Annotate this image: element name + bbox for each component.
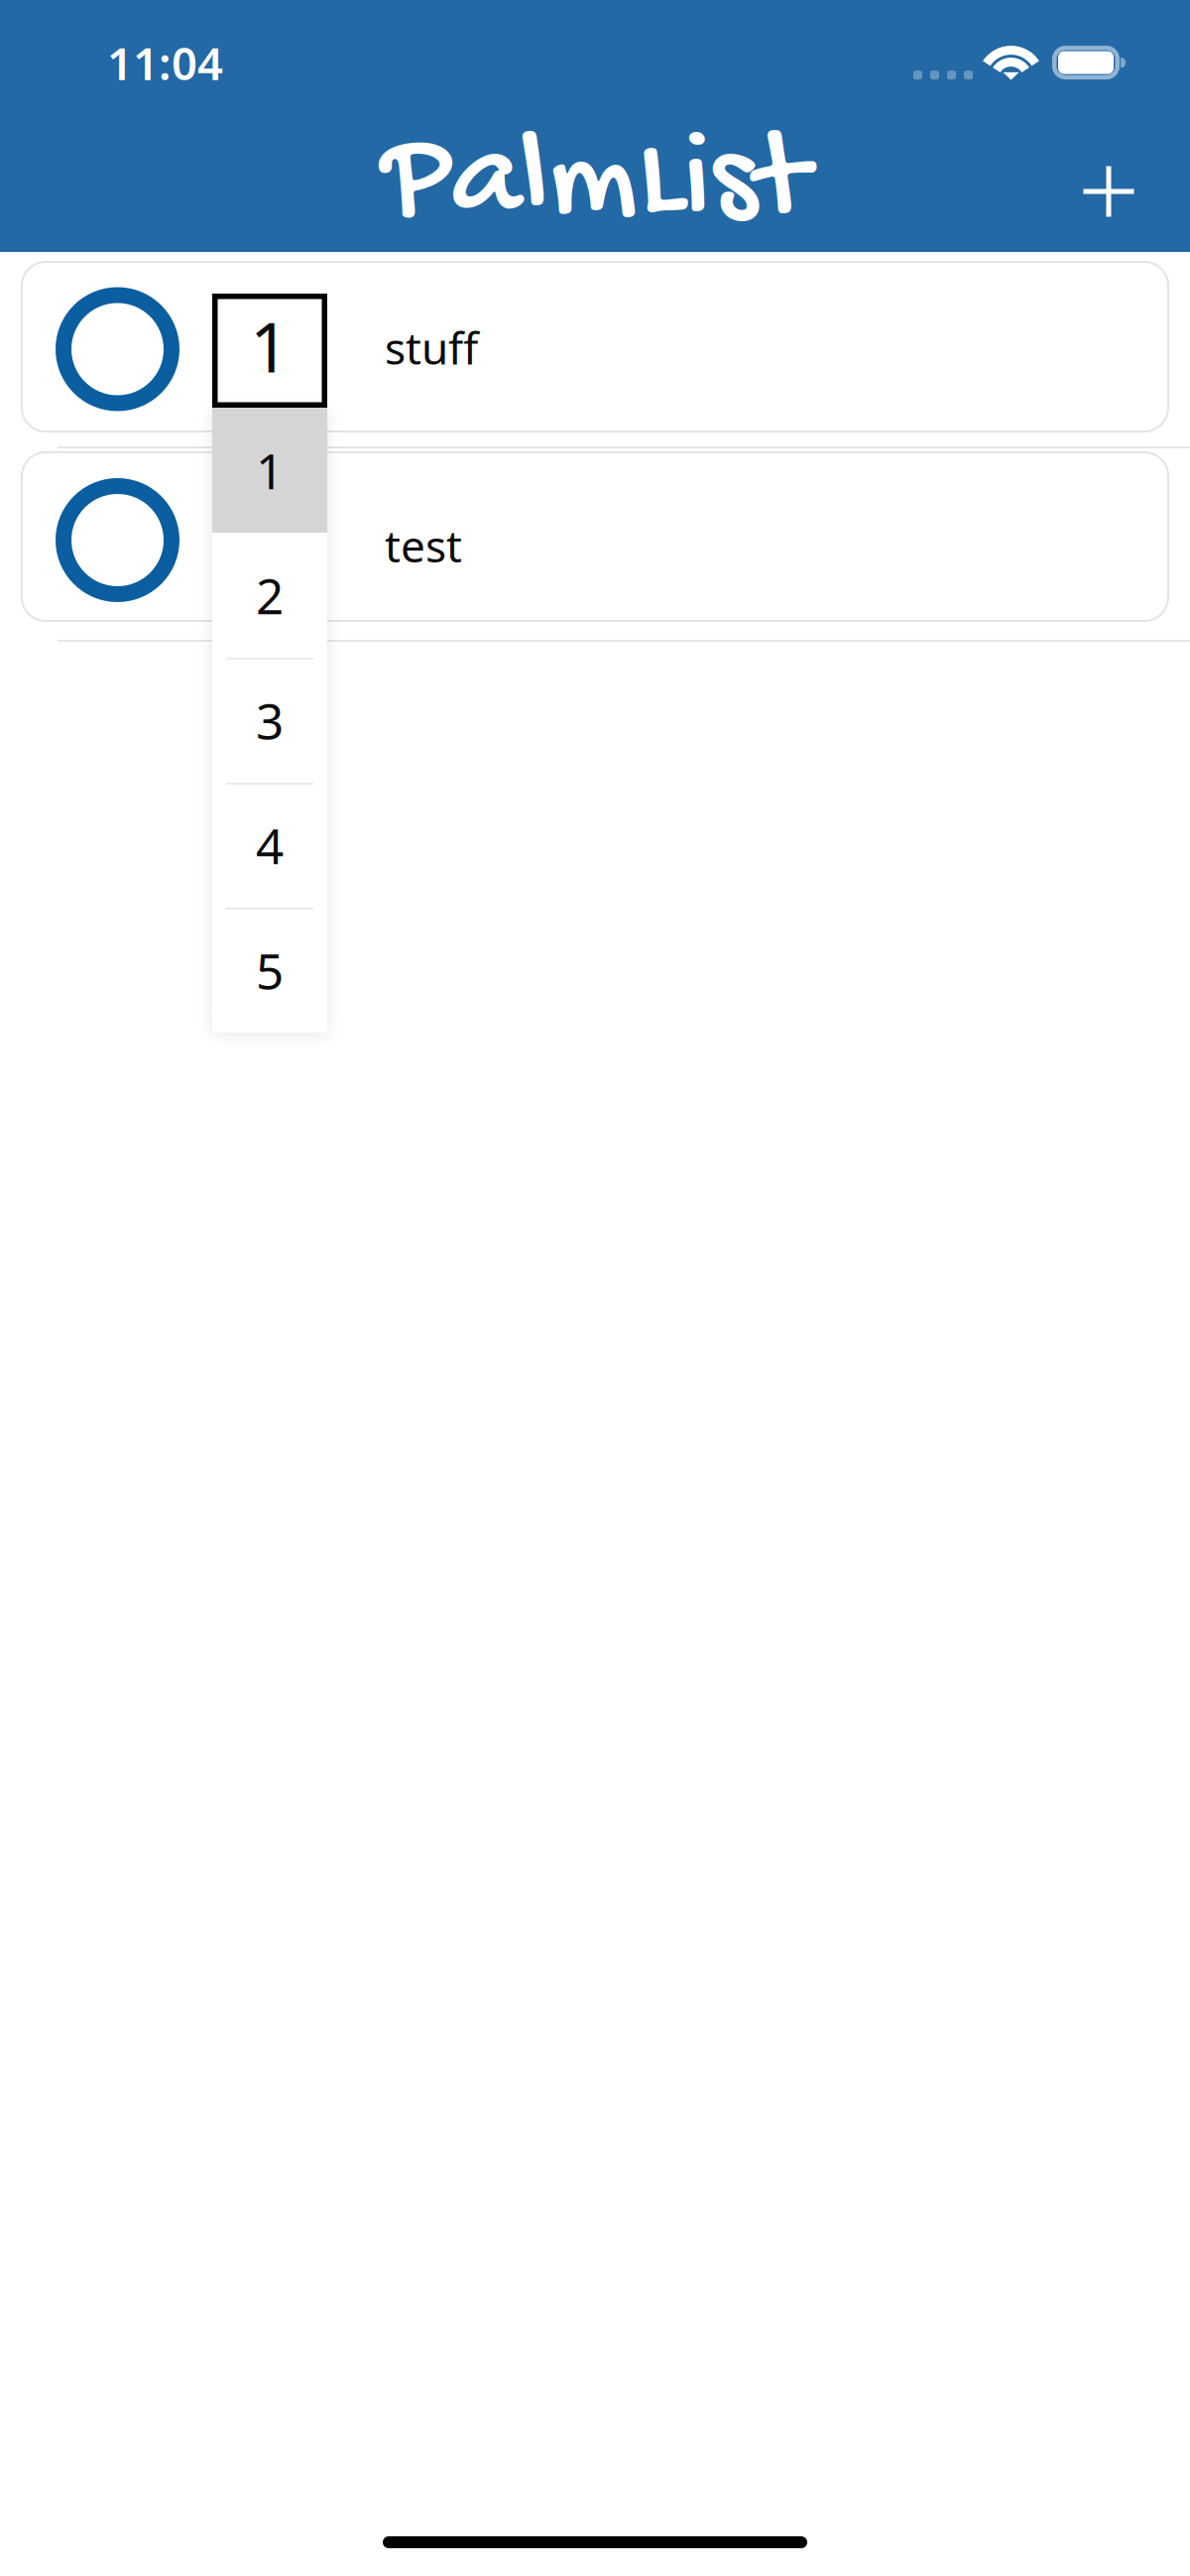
staticText: 4 [256, 813, 284, 878]
button[interactable]: 2 [212, 533, 327, 658]
button[interactable]: 1 [212, 408, 327, 533]
button[interactable]: 3 [212, 658, 327, 783]
staticText: test [385, 517, 462, 575]
staticText: 11:04 [107, 33, 223, 92]
staticText: 5 [256, 938, 284, 1003]
staticText: PalmList [382, 110, 808, 258]
staticText: 3 [256, 688, 284, 753]
button[interactable]: 4 [212, 783, 327, 908]
staticText: 2 [256, 563, 284, 628]
button[interactable]: Add item [1053, 144, 1190, 239]
staticText: 1 [250, 300, 290, 391]
staticText: 1 [256, 438, 284, 503]
button[interactable]: stuff [22, 262, 1168, 431]
staticText: stuff [385, 319, 478, 377]
button[interactable]: 5 [212, 908, 327, 1033]
button[interactable]: test [22, 452, 1168, 621]
